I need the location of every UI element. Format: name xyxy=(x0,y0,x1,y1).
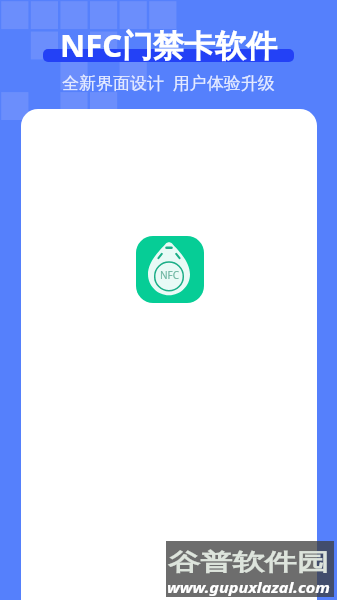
staticText: NFC xyxy=(160,268,180,282)
button[interactable]: NFC xyxy=(136,236,204,303)
staticText: 谷普软件园 xyxy=(168,548,329,577)
staticText: NFC门禁卡软件 xyxy=(60,24,278,66)
staticText: 全新界面设计 用户体验升级 xyxy=(62,71,275,94)
staticText: www.gupuxlazal.com xyxy=(167,577,330,597)
